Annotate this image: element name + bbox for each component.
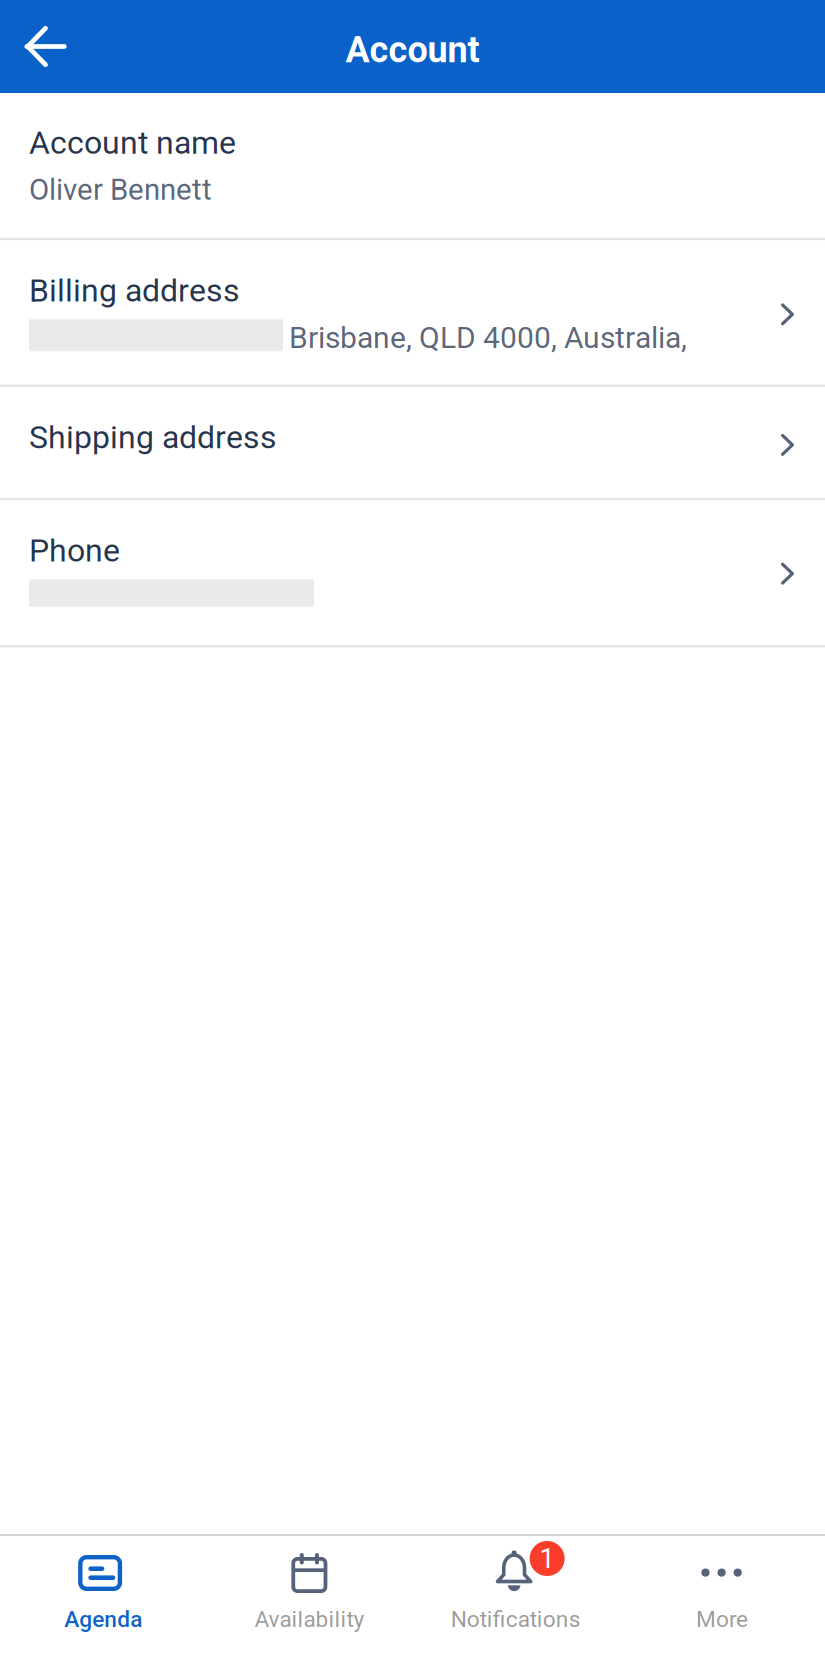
staticText: Notifications (451, 1606, 581, 1632)
button[interactable]: Shipping address (0, 387, 825, 498)
button[interactable]: Billing address (0, 240, 825, 384)
staticText: Phone (29, 532, 120, 569)
button[interactable]: Phone (0, 500, 825, 645)
staticText: Billing address (29, 272, 240, 309)
button[interactable]: Availability (206, 1536, 412, 1660)
staticText: Account name (29, 124, 236, 161)
staticText: Shipping address (29, 418, 277, 456)
staticText: Availability (254, 1606, 364, 1632)
button[interactable]: More (619, 1536, 825, 1660)
staticText: 1 (539, 1542, 555, 1575)
button[interactable]: 1 (412, 1536, 619, 1660)
staticText: Oliver Bennett (29, 172, 212, 207)
staticText: Brisbane, QLD 4000, Australia, (289, 320, 687, 355)
staticText: Agenda (64, 1606, 142, 1632)
button[interactable]: Agenda (0, 1536, 206, 1660)
staticText: More (696, 1606, 748, 1632)
staticText: Account (345, 29, 479, 71)
button[interactable]: Back (0, 0, 87, 93)
